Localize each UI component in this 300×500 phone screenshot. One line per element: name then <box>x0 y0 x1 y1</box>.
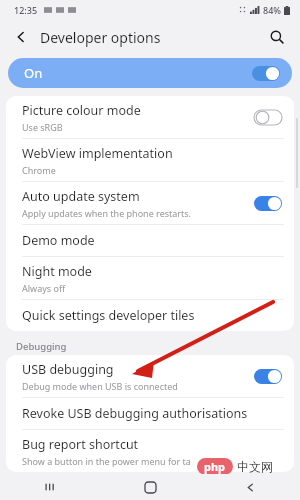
button[interactable]: Back <box>200 474 300 500</box>
button[interactable]: Toggle on <box>252 66 280 81</box>
staticText: Night mode <box>22 263 92 280</box>
staticText: Apply updates when the phone restarts. <box>22 207 192 219</box>
staticText: Chrome <box>22 164 56 176</box>
button[interactable]: Night mode <box>6 257 294 299</box>
staticText: 12:35 <box>14 4 38 16</box>
button[interactable]: USB debugging <box>6 355 294 397</box>
staticText: php <box>204 459 226 474</box>
button[interactable]: Search <box>262 22 292 52</box>
staticText: Always off <box>22 282 66 294</box>
staticText: Auto update system <box>22 188 140 205</box>
button[interactable]: Quick settings developer tiles <box>6 300 294 331</box>
staticText: Developer options <box>40 28 161 47</box>
button[interactable]: WebView implementation <box>6 139 294 181</box>
button[interactable]: On <box>8 58 292 88</box>
staticText: Bug report shortcut <box>22 436 139 453</box>
staticText: Debug mode when USB is connected <box>22 380 178 392</box>
button[interactable]: Recents <box>0 474 100 500</box>
button[interactable]: Auto update system <box>6 182 294 224</box>
button[interactable]: Home <box>100 474 200 500</box>
button[interactable]: Toggle off <box>254 110 282 125</box>
staticText: Show a button in the power menu for ta <box>22 455 191 467</box>
staticText: USB debugging <box>22 361 114 378</box>
staticText: 84% <box>263 4 281 16</box>
button[interactable]: Demo mode <box>6 225 294 256</box>
button[interactable]: Revoke USB debugging authorisations <box>6 398 294 429</box>
staticText: Debugging <box>16 340 67 353</box>
button[interactable]: Bug report shortcut <box>6 430 294 472</box>
button[interactable]: Toggle on <box>254 196 282 211</box>
staticText: Demo mode <box>22 232 95 249</box>
button[interactable]: Picture colour mode <box>6 96 294 138</box>
staticText: Picture colour mode <box>22 102 141 119</box>
staticText: 中文网 <box>237 459 273 474</box>
staticText: Quick settings developer tiles <box>22 307 195 324</box>
staticText: Use sRGB <box>22 121 63 133</box>
staticText: WebView implementation <box>22 145 173 162</box>
button[interactable]: Back <box>6 22 36 52</box>
staticText: Revoke USB debugging authorisations <box>22 405 248 422</box>
staticText: On <box>24 64 43 82</box>
button[interactable]: Toggle on <box>254 369 282 384</box>
